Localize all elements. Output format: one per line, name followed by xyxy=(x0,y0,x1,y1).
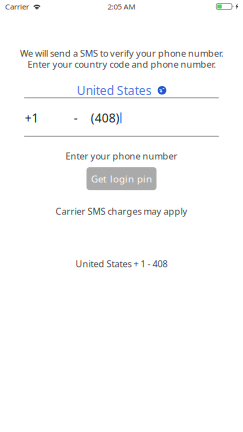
staticText: 2:05 AM xyxy=(107,1,135,12)
staticText: Carrier xyxy=(5,1,29,12)
staticText: United States xyxy=(77,82,152,98)
staticText: United States + 1 - 408 xyxy=(75,257,167,270)
staticText: (408) xyxy=(91,110,120,126)
staticText: Enter your country code and phone number… xyxy=(27,58,215,70)
staticText: - xyxy=(74,110,78,126)
button[interactable]: United States xyxy=(24,85,219,98)
staticText: Carrier SMS charges may apply xyxy=(55,205,187,217)
staticText: +1 xyxy=(25,110,39,126)
staticText: We will send a SMS to verify your phone … xyxy=(20,47,223,59)
button[interactable]: Get login pin xyxy=(86,167,156,190)
staticText: Get login pin xyxy=(91,172,152,185)
staticText: Enter your phone number xyxy=(65,150,177,162)
